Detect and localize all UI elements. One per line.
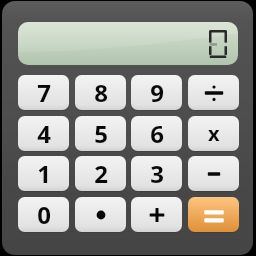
button[interactable]: Multiply [188,116,239,151]
staticText: 9 [150,76,164,109]
staticText: 2 [94,157,108,190]
staticText: 5 [94,117,108,150]
staticText: 6 [150,117,164,150]
button[interactable]: 1 [18,156,69,191]
button[interactable]: 0 [18,197,69,232]
button[interactable]: 2 [75,156,126,191]
button[interactable]: 5 [75,116,126,151]
staticText: 3 [150,157,164,190]
staticText: 7 [37,76,51,109]
button[interactable]: 8 [75,75,126,110]
button[interactable]: Add [131,197,182,232]
button[interactable]: 4 [18,116,69,151]
button[interactable]: 7 [18,75,69,110]
staticText: x [208,120,220,147]
staticText: 4 [37,117,51,150]
staticText: 1 [37,157,51,190]
staticText: 0 [37,198,51,231]
button[interactable]: Divide [188,75,239,110]
button[interactable]: 9 [131,75,182,110]
button[interactable]: 3 [131,156,182,191]
button[interactable]: Subtract [188,156,239,191]
button[interactable]: 6 [131,116,182,151]
staticText: 8 [94,76,108,109]
button[interactable]: Equals [188,197,239,232]
button[interactable]: Decimal point [75,197,126,232]
